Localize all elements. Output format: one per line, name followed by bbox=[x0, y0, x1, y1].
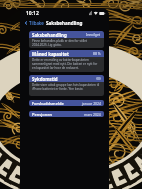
staticText: Dette viser uttak gruppe kan hvis kapasi… bbox=[32, 83, 101, 91]
button[interactable]: Forskuddsmelde bbox=[29, 100, 104, 106]
button[interactable]: Pensjonen bbox=[29, 111, 104, 117]
staticText: 10:12 bbox=[26, 10, 39, 17]
staticText: Pinne behandles plukk er den for stillet… bbox=[32, 39, 101, 47]
staticText: Sykdomstid bbox=[32, 76, 58, 82]
staticText: Saksbehandling bbox=[32, 32, 67, 38]
staticText: Dette er en måling av batterikapasiteten… bbox=[32, 58, 101, 70]
button[interactable]: Tilbake bbox=[20, 18, 48, 28]
staticText: Innvilget bbox=[86, 32, 101, 37]
staticText: 88 % bbox=[93, 51, 101, 56]
other: Status bbox=[89, 11, 106, 16]
staticText: januar 2024 bbox=[82, 101, 101, 106]
button[interactable]: Måned kapasitet bbox=[29, 50, 104, 72]
button[interactable]: Saksbehandling bbox=[29, 31, 104, 48]
staticText: Pensjonen bbox=[32, 112, 53, 117]
staticText: Saksbehandling bbox=[46, 20, 83, 26]
staticText: Måned kapasitet bbox=[32, 51, 69, 57]
button[interactable]: Sykdomstid bbox=[29, 75, 104, 96]
staticText: Forskuddsmelde bbox=[32, 101, 64, 106]
staticText: Tilbake bbox=[29, 20, 44, 26]
staticText: mars 2024 bbox=[84, 112, 101, 117]
